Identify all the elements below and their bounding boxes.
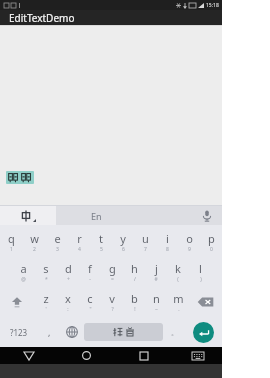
button[interactable]: k [167, 257, 189, 287]
staticText: ? [111, 306, 114, 313]
button[interactable]: Home [57, 347, 115, 364]
button[interactable]: n [145, 287, 167, 317]
button[interactable]: g [101, 257, 123, 287]
staticText: o [186, 231, 193, 246]
staticText: i [166, 231, 169, 246]
button[interactable]: v [101, 287, 123, 317]
button[interactable]: y [112, 227, 134, 257]
button[interactable]: j [145, 257, 167, 287]
button[interactable]: ?123 [0, 317, 38, 347]
button[interactable]: i [156, 227, 178, 257]
button[interactable]: Voice input [200, 209, 214, 223]
staticText: u [142, 231, 149, 246]
button[interactable]: Change keyboard language [60, 317, 84, 347]
button[interactable] [84, 323, 163, 341]
button[interactable]: q [0, 227, 23, 257]
staticText: ) [200, 276, 202, 283]
button[interactable]: x [57, 287, 79, 317]
staticText: 5 [100, 246, 103, 253]
staticText: / [134, 276, 136, 283]
staticText: q [8, 231, 15, 246]
staticText: a [20, 261, 27, 276]
staticText: v [109, 291, 115, 306]
button[interactable]: u [134, 227, 156, 257]
staticText: - [89, 276, 91, 283]
staticText: 1 [10, 246, 13, 253]
staticText: = [111, 276, 114, 283]
button[interactable]: Recent apps [115, 347, 173, 364]
staticText: 3 [56, 246, 59, 253]
staticText: 8 [166, 246, 169, 253]
staticText: g [109, 261, 116, 276]
button[interactable] [0, 206, 56, 225]
button[interactable]: d [57, 257, 79, 287]
button[interactable]: t [90, 227, 112, 257]
staticText: ~ [155, 306, 158, 313]
staticText: f [88, 261, 92, 276]
button[interactable]: r [68, 227, 90, 257]
button[interactable]: c [79, 287, 101, 317]
button[interactable]: p [200, 227, 222, 257]
staticText: e [54, 231, 61, 246]
staticText: n [153, 291, 160, 306]
staticText: c [87, 291, 93, 306]
staticText: l [199, 261, 202, 276]
button[interactable]: h [123, 257, 145, 287]
staticText: s [43, 261, 49, 276]
button[interactable]: Enter [193, 322, 214, 343]
button[interactable]: s [35, 257, 57, 287]
staticText: p [208, 231, 215, 246]
button[interactable]: a [12, 257, 35, 287]
staticText: + [67, 276, 70, 283]
staticText: b [131, 291, 138, 306]
staticText: y [120, 231, 126, 246]
staticText: z [43, 291, 49, 306]
staticText: # [154, 276, 158, 283]
staticText: * [45, 276, 48, 283]
button[interactable]: w [23, 227, 46, 257]
staticText: m [173, 291, 184, 306]
staticText: w [30, 231, 39, 246]
button[interactable]: Back [0, 347, 57, 364]
button[interactable]: z [34, 287, 57, 317]
button[interactable]: Backspace [189, 287, 222, 317]
button[interactable]: Switch keyboard [173, 347, 222, 364]
staticText: ! [134, 306, 136, 313]
staticText: 0 [210, 246, 213, 253]
staticText: . [178, 306, 180, 313]
staticText: EditTextDemo [9, 11, 75, 25]
button[interactable]: o [178, 227, 200, 257]
staticText: ' [45, 306, 47, 313]
button[interactable]: , [38, 317, 60, 347]
button[interactable]: En [56, 206, 136, 225]
staticText: ( [177, 276, 179, 283]
button[interactable]: m [167, 287, 189, 317]
staticText: 。 [171, 328, 178, 337]
button[interactable]: Shift [0, 287, 34, 317]
staticText: t [99, 231, 103, 246]
staticText: 9 [188, 246, 191, 253]
staticText: x [65, 291, 71, 306]
staticText: 15:18 [206, 2, 219, 9]
button[interactable]: b [123, 287, 145, 317]
staticText: , [48, 326, 51, 338]
staticText: k [175, 261, 181, 276]
staticText: 6 [122, 246, 125, 253]
staticText: r [77, 231, 82, 246]
staticText: ?123 [10, 327, 28, 338]
button[interactable]: l [189, 257, 211, 287]
staticText: d [65, 261, 72, 276]
staticText: h [131, 261, 138, 276]
staticText: j [155, 261, 158, 276]
staticText: : [67, 306, 69, 313]
staticText: En [91, 210, 102, 222]
staticText: 2 [33, 246, 36, 253]
button[interactable]: f [79, 257, 101, 287]
staticText: " [89, 306, 92, 313]
button[interactable]: e [46, 227, 68, 257]
staticText: @ [21, 276, 26, 283]
staticText: 4 [78, 246, 81, 253]
staticText: 7 [144, 246, 147, 253]
